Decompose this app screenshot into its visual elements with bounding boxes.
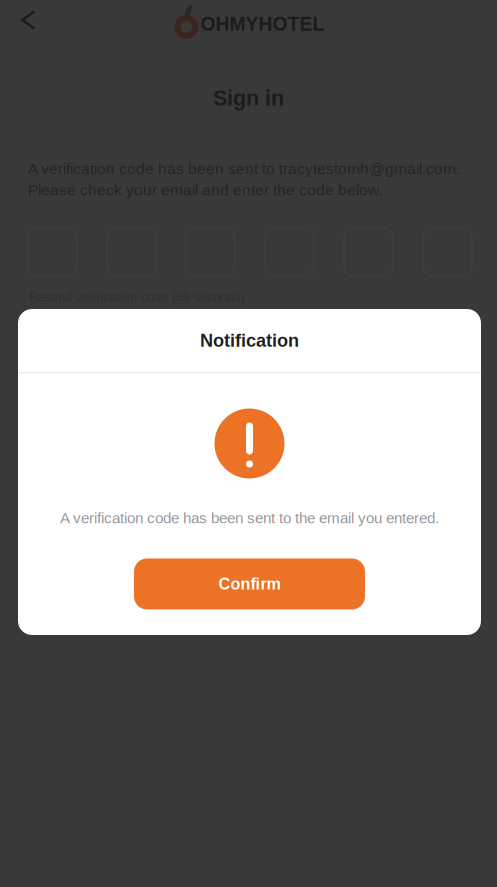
staticText: A verification code has been sent to the… [60,509,439,526]
button[interactable]: Back [0,10,497,36]
staticText: Confirm [218,575,280,593]
staticText: Sign in [213,86,284,110]
staticText: Resend verification code (59 seconds) [29,289,244,304]
staticText: Notification [200,330,299,351]
staticText: OHMYHOTEL [200,13,324,35]
staticText: A verification code has been sent to tra… [28,160,460,198]
button[interactable]: Confirm [134,558,365,609]
